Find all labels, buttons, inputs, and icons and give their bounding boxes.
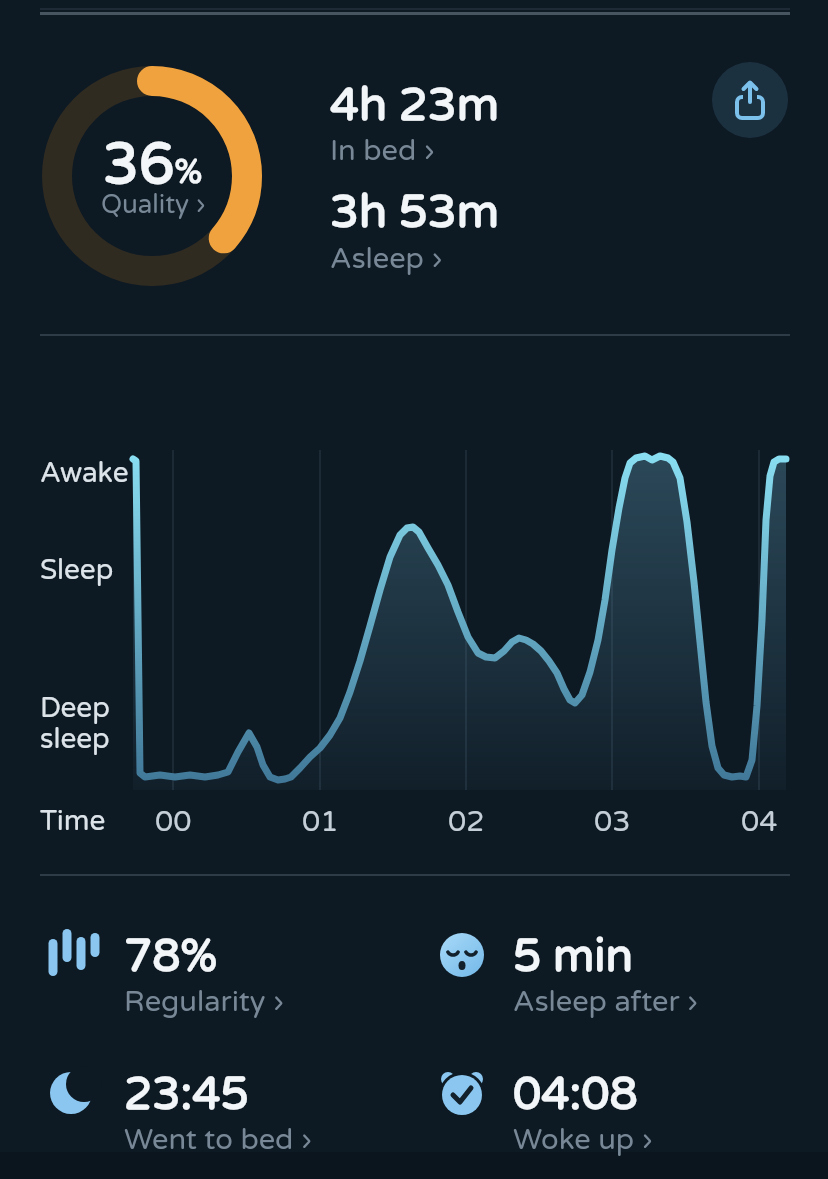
staticText: Awake <box>40 456 129 490</box>
staticText: Time <box>40 804 106 838</box>
button[interactable]: 78% <box>44 926 284 1019</box>
staticText: 03 <box>594 804 631 839</box>
staticText: 36% <box>103 131 203 200</box>
staticText: 04 <box>741 804 778 839</box>
button[interactable]: 04:08 <box>433 1064 653 1157</box>
staticText: 3h 53m <box>330 185 499 240</box>
staticText: Woke up › <box>513 1122 653 1157</box>
staticText: Regularity › <box>124 984 284 1019</box>
staticText: Went to bed › <box>124 1122 312 1157</box>
staticText: 01 <box>302 804 339 839</box>
button[interactable]: 5 min <box>433 926 699 1019</box>
staticText: 5 min <box>513 930 633 984</box>
staticText: 02 <box>448 804 485 839</box>
staticText: 78% <box>124 930 218 984</box>
staticText: Asleep after › <box>513 984 699 1019</box>
button[interactable]: 23:45 <box>44 1064 312 1157</box>
staticText: 04:08 <box>513 1068 638 1122</box>
staticText: Deep sleep <box>40 691 110 756</box>
staticText: 23:45 <box>124 1068 249 1122</box>
staticText: Sleep <box>40 553 114 587</box>
staticText: 00 <box>155 804 192 839</box>
button[interactable] <box>712 62 788 138</box>
button[interactable]: Quality › <box>101 189 206 220</box>
button[interactable]: In bed › <box>330 133 435 168</box>
button[interactable]: Asleep › <box>330 241 443 276</box>
staticText: 4h 23m <box>330 78 499 133</box>
